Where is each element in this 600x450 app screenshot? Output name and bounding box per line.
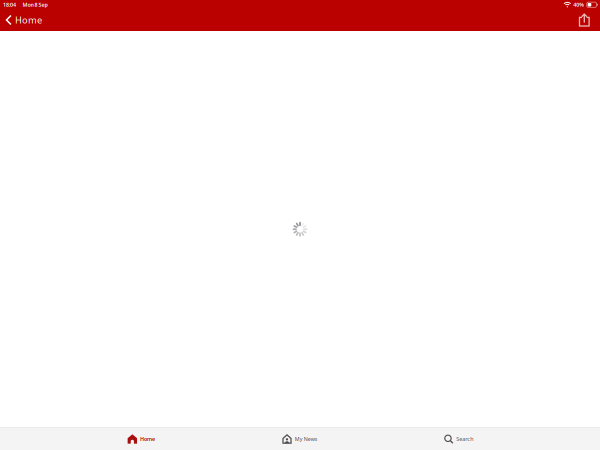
staticText: Search [456,435,473,443]
staticText: Home [140,435,155,443]
staticText: 18:04 [3,1,16,8]
staticText: My News [295,435,318,443]
button[interactable]: My News [221,428,379,450]
staticText: 40% [573,1,584,8]
button[interactable]: Home [62,428,221,450]
staticText: Mon 8 Sep [22,1,47,8]
staticText: Home [15,14,42,26]
button[interactable]: Search [379,428,538,450]
button[interactable]: Home [0,12,50,28]
button[interactable]: Share [573,12,596,28]
